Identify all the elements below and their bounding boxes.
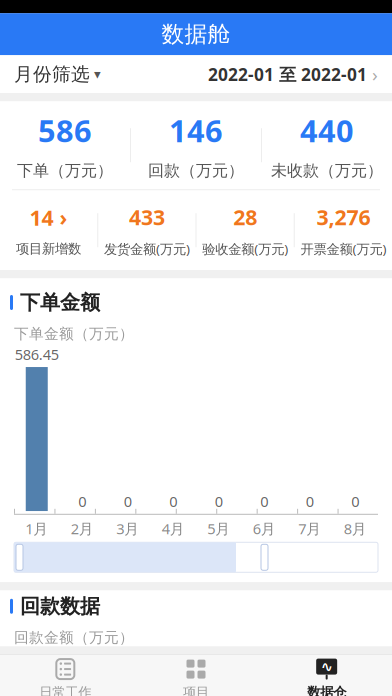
staticText: 0: [260, 492, 268, 511]
staticText: 0: [78, 492, 86, 511]
button[interactable]: 月份筛选: [0, 55, 392, 93]
staticText: 下单金额（万元）: [14, 325, 134, 343]
staticText: ▾: [90, 67, 101, 82]
staticText: 3月: [116, 519, 139, 538]
staticText: ∿: [321, 658, 333, 675]
staticText: 开票金额(万元): [300, 240, 386, 258]
staticText: 回款（万元）: [148, 161, 244, 180]
button[interactable]: ∿: [261, 655, 392, 696]
staticText: 项目新增数: [16, 241, 81, 257]
staticText: 0: [124, 492, 132, 511]
staticText: 回款金额（万元）: [14, 629, 134, 647]
staticText: 7月: [298, 519, 321, 538]
staticText: 回款数据: [20, 594, 100, 619]
staticText: 433: [129, 203, 165, 231]
staticText: 月份筛选: [14, 63, 90, 86]
staticText: 0: [169, 492, 177, 511]
staticText: 项目: [183, 684, 209, 696]
staticText: 1月: [25, 519, 48, 538]
staticText: 28: [233, 203, 257, 231]
staticText: 0: [306, 492, 314, 511]
staticText: 验收金额(万元): [202, 240, 288, 258]
staticText: 0: [351, 492, 359, 511]
staticText: ›: [367, 62, 378, 87]
staticText: 0: [215, 492, 223, 511]
staticText: 4月: [162, 519, 185, 538]
staticText: 8月: [344, 519, 367, 538]
staticText: 14 ›: [30, 203, 68, 232]
staticText: 未收款（万元）: [271, 161, 383, 180]
staticText: 3,276: [316, 203, 370, 231]
staticText: 440: [300, 110, 354, 151]
staticText: 2022-01 至 2022-01: [208, 63, 367, 86]
staticText: 下单（万元）: [17, 161, 113, 180]
staticText: 数据仓: [307, 684, 346, 696]
button[interactable]: 项目: [131, 655, 261, 696]
staticText: 586.45: [15, 345, 59, 364]
staticText: 发货金额(万元): [104, 240, 190, 258]
staticText: 数据舱: [161, 20, 230, 48]
staticText: 2月: [71, 519, 94, 538]
staticText: 5月: [207, 519, 230, 538]
button[interactable]: 日常工作: [0, 655, 131, 696]
staticText: 6月: [253, 519, 276, 538]
staticText: 下单金额: [20, 290, 100, 315]
staticText: 日常工作: [39, 684, 91, 696]
staticText: 586: [38, 110, 92, 151]
staticText: 146: [169, 110, 223, 151]
